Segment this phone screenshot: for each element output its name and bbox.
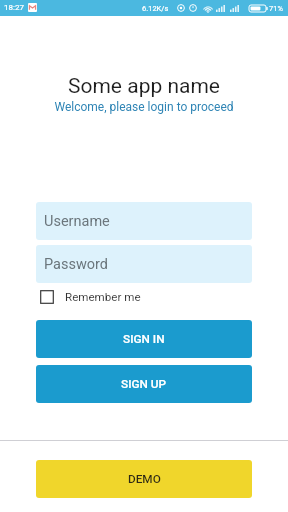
staticText: Remember me: [65, 290, 141, 304]
button[interactable]: Username: [36, 202, 252, 240]
button[interactable]: DEMO: [36, 460, 252, 498]
staticText: Password: [44, 256, 109, 273]
staticText: Some app name: [0, 74, 288, 99]
other: Gmail notification: [28, 3, 37, 12]
staticText: 6.12K/s: [142, 4, 169, 13]
staticText: 71%: [269, 4, 283, 13]
button[interactable]: Remember me: [38, 288, 143, 306]
staticText: Welcome, please login to proceed: [0, 100, 288, 114]
staticText: SIGN UP: [121, 377, 167, 391]
button[interactable]: SIGN IN: [36, 320, 252, 358]
staticText: 18:27: [4, 3, 24, 12]
staticText: Username: [44, 213, 110, 230]
staticText: SIGN IN: [123, 332, 165, 346]
button[interactable]: Password: [36, 245, 252, 283]
button[interactable]: SIGN UP: [36, 365, 252, 403]
staticText: DEMO: [128, 472, 161, 486]
